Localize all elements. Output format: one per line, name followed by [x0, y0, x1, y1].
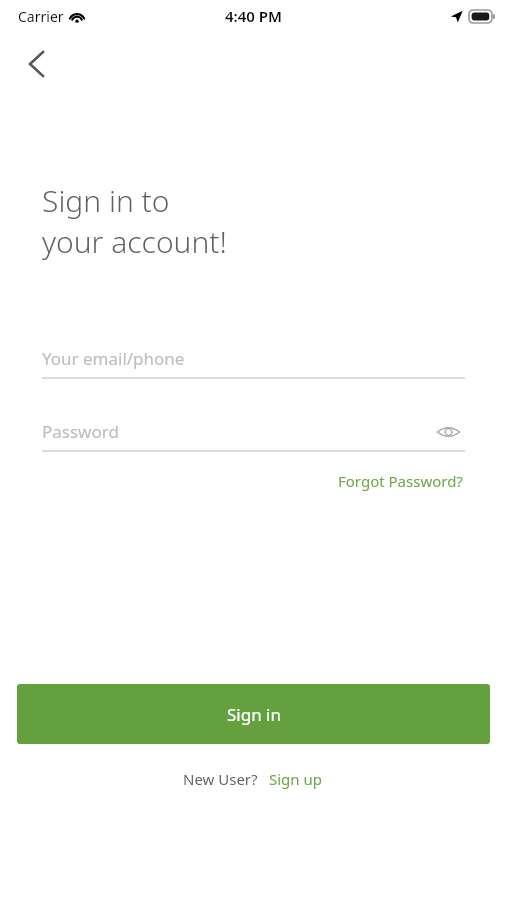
staticText: Sign up [269, 769, 322, 789]
staticText: New User? [183, 769, 258, 789]
staticText: Carrier [18, 7, 64, 26]
staticText: Sign in [227, 703, 281, 726]
staticText: 4:40 PM [225, 6, 282, 26]
button[interactable]: Sign up [267, 766, 324, 792]
staticText: Forgot Password? [338, 471, 463, 491]
button[interactable]: Your email/phone [42, 340, 465, 379]
button[interactable]: Show password [431, 415, 465, 449]
staticText: Your email/phone [42, 347, 185, 370]
staticText: Sign in to [42, 180, 170, 221]
button[interactable]: Password [42, 413, 465, 450]
staticText: your account! [42, 221, 227, 262]
button[interactable]: Back [12, 40, 60, 88]
button[interactable]: Sign in [17, 684, 490, 744]
button[interactable]: Forgot Password? [336, 468, 465, 494]
staticText: Password [42, 420, 119, 443]
